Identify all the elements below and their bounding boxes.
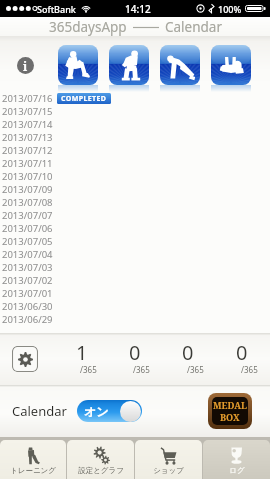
- button[interactable]: 2013/07/11: [0, 157, 270, 170]
- staticText: 2013/07/15: [2, 105, 53, 118]
- staticText: 0: [236, 339, 248, 366]
- staticText: Calendar: [12, 402, 67, 420]
- staticText: トレーニング: [10, 466, 56, 475]
- staticText: オン: [84, 404, 109, 419]
- staticText: /365: [80, 364, 97, 375]
- staticText: 2013/07/12: [2, 144, 53, 157]
- staticText: 0: [182, 339, 194, 366]
- button[interactable]: 2013/07/03: [0, 261, 270, 274]
- staticText: MEDAL: [213, 399, 247, 411]
- staticText: 2013/07/01: [2, 287, 53, 300]
- staticText: SoftBank: [37, 3, 76, 15]
- button[interactable]: 0: [105, 333, 158, 385]
- button[interactable]: ログ: [203, 440, 270, 479]
- button[interactable]: 2013/06/29: [0, 313, 270, 326]
- staticText: 2013/07/05: [2, 235, 53, 248]
- button[interactable]: Info: [17, 57, 34, 74]
- staticText: 2013/07/09: [2, 183, 53, 196]
- staticText: Calendar: [165, 18, 222, 36]
- button[interactable]: 2013/07/01: [0, 287, 270, 300]
- button[interactable]: 2013/07/06: [0, 222, 270, 235]
- staticText: 2013/06/30: [2, 300, 53, 313]
- button[interactable]: 2013/07/02: [0, 274, 270, 287]
- button[interactable]: ショップ: [135, 440, 202, 479]
- button[interactable]: 2013/07/10: [0, 170, 270, 183]
- staticText: 2013/07/11: [2, 157, 53, 170]
- staticText: /365: [187, 364, 204, 375]
- button[interactable]: 2013/07/12: [0, 144, 270, 157]
- button[interactable]: 0: [212, 333, 266, 385]
- button[interactable]: 2013/07/13: [0, 131, 270, 144]
- staticText: 2013/07/14: [2, 118, 53, 131]
- button[interactable]: 2013/07/04: [0, 248, 270, 261]
- staticText: 365daysApp: [49, 18, 127, 36]
- staticText: 2013/06/29: [2, 313, 53, 326]
- button[interactable]: Exercise 3: [160, 45, 200, 85]
- staticText: 2013/07/08: [2, 196, 53, 209]
- staticText: 2013/07/16: [2, 92, 53, 105]
- staticText: /365: [241, 364, 258, 375]
- staticText: 2013/07/06: [2, 222, 53, 235]
- button[interactable]: Exercise 4: [211, 45, 251, 85]
- staticText: 2013/07/07: [2, 209, 53, 222]
- button[interactable]: 2013/07/09: [0, 183, 270, 196]
- button[interactable]: 0: [158, 333, 212, 385]
- staticText: 14:12: [125, 2, 151, 16]
- staticText: ログ: [229, 466, 245, 475]
- staticText: COMPLETED: [61, 94, 107, 104]
- button[interactable]: Calendar on: [77, 400, 142, 422]
- staticText: 2013/07/04: [2, 248, 53, 261]
- button[interactable]: 2013/07/08: [0, 196, 270, 209]
- button[interactable]: 2013/07/14: [0, 118, 270, 131]
- staticText: 設定とグラフ: [78, 466, 124, 475]
- staticText: BOX: [220, 411, 240, 423]
- button[interactable]: Settings: [12, 346, 38, 372]
- staticText: /365: [133, 364, 150, 375]
- button[interactable]: 2013/07/07: [0, 209, 270, 222]
- button[interactable]: 2013/07/15: [0, 105, 270, 118]
- staticText: 2013/07/10: [2, 170, 53, 183]
- button[interactable]: 2013/07/16: [0, 92, 270, 105]
- staticText: ショップ: [153, 466, 184, 475]
- button[interactable]: Exercise 2: [109, 45, 149, 85]
- staticText: 2013/07/03: [2, 261, 53, 274]
- staticText: 0: [129, 339, 141, 366]
- staticText: 2013/07/13: [2, 131, 53, 144]
- button[interactable]: Medal box: [208, 393, 252, 429]
- button[interactable]: 2013/07/05: [0, 235, 270, 248]
- button[interactable]: 1: [52, 333, 105, 385]
- button[interactable]: Exercise 1: [58, 45, 98, 85]
- staticText: 1: [76, 339, 88, 366]
- staticText: 100%: [218, 3, 242, 15]
- staticText: 2013/07/02: [2, 274, 53, 287]
- staticText: i: [23, 58, 28, 74]
- button[interactable]: 2013/06/30: [0, 300, 270, 313]
- button[interactable]: 設定とグラフ: [67, 440, 134, 479]
- button[interactable]: トレーニング: [0, 440, 66, 479]
